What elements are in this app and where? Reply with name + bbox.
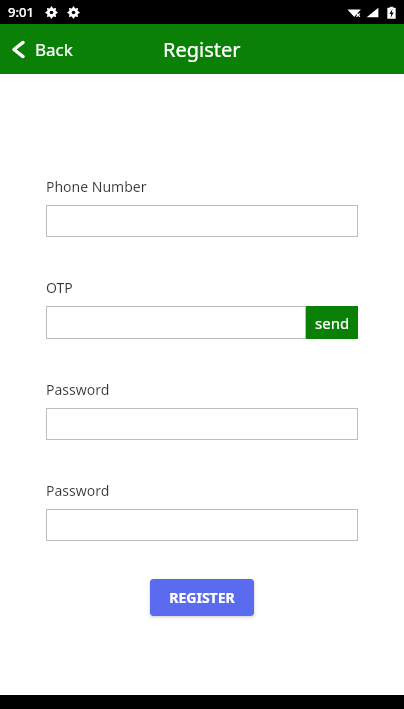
staticText: 9:01 [8, 3, 34, 21]
staticText: Phone Number [46, 177, 147, 196]
staticText: Password [46, 380, 110, 399]
staticText: Register [163, 36, 241, 63]
button[interactable] [46, 408, 358, 440]
button[interactable]: Back [4, 30, 78, 69]
staticText: Password [46, 481, 110, 500]
button[interactable]: send [306, 306, 358, 339]
staticText: Back [35, 38, 73, 61]
button[interactable] [46, 205, 358, 237]
button[interactable] [46, 509, 358, 541]
staticText: REGISTER [169, 588, 235, 607]
button[interactable]: REGISTER [150, 579, 254, 616]
staticText: send [315, 313, 350, 333]
button[interactable] [46, 306, 306, 339]
staticText: OTP [46, 278, 73, 297]
